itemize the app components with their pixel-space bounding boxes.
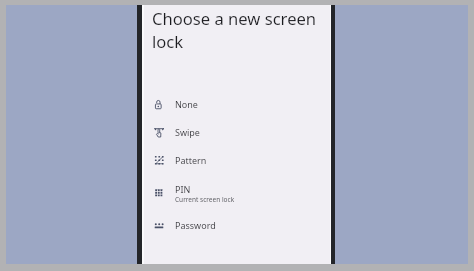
button[interactable]: None (144, 93, 330, 117)
staticText: Pattern (175, 154, 207, 166)
staticText: PIN (175, 183, 191, 195)
staticText: Current screen lock (175, 195, 235, 204)
staticText: Choose a new screen lock (152, 7, 324, 53)
staticText: Swipe (175, 126, 200, 138)
button[interactable]: Password (144, 214, 330, 238)
button[interactable]: Pattern (144, 149, 330, 173)
staticText: None (175, 98, 198, 110)
staticText: Password (175, 219, 216, 231)
button[interactable]: Swipe (144, 121, 330, 145)
button[interactable]: PIN (144, 180, 330, 208)
